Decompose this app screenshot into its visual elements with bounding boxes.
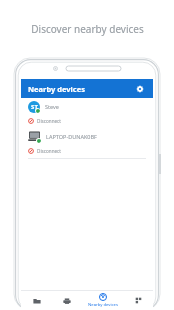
- button[interactable]: LAPTOP-DUNAK0BF: [21, 128, 153, 145]
- staticText: LAPTOP-DUNAK0BF: [46, 133, 97, 140]
- button[interactable]: More: [123, 297, 153, 304]
- staticText: Nearby devices: [28, 84, 85, 94]
- button[interactable]: Files: [21, 297, 52, 305]
- button[interactable]: Settings: [134, 83, 146, 95]
- button[interactable]: Print: [52, 297, 82, 305]
- button[interactable]: Disconnect: [21, 145, 153, 156]
- button[interactable]: Nearby devices: [82, 293, 123, 308]
- button[interactable]: Disconnect: [21, 115, 153, 126]
- staticText: Disconnect: [37, 118, 61, 124]
- button[interactable]: ST: [21, 98, 153, 115]
- staticText: Steve: [45, 103, 59, 110]
- staticText: ST: [31, 103, 38, 111]
- staticText: Disconnect: [37, 148, 61, 154]
- button[interactable]: Nearby devices: [21, 79, 153, 98]
- staticText: Nearby devices: [88, 302, 118, 308]
- staticText: Discover nearby devices: [31, 22, 144, 36]
